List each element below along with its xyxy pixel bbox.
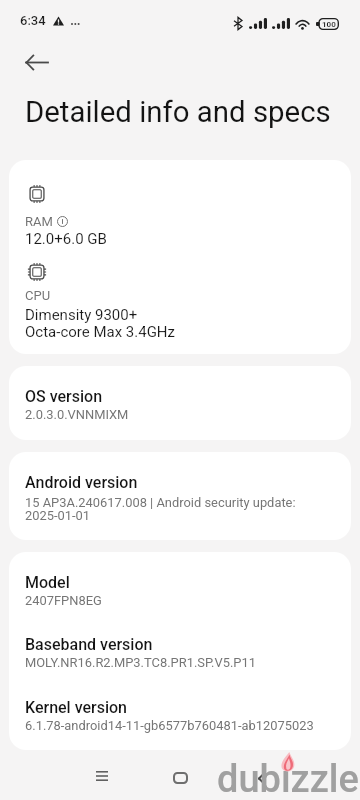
staticText: Android version: [25, 473, 138, 492]
staticText: dubizzle: [217, 757, 359, 800]
button[interactable]: Android version: [9, 452, 351, 540]
staticText: 100: [322, 20, 336, 29]
staticText: 15 AP3A.240617.008 | Android security up…: [25, 495, 296, 510]
button[interactable]: Recent apps: [78, 752, 126, 800]
button[interactable]: Home: [156, 754, 204, 800]
staticText: 12.0+6.0 GB: [25, 230, 107, 248]
staticText: 6.1.78-android14-11-gb6577b760481-ab1207…: [25, 718, 314, 733]
staticText: OS version: [25, 387, 103, 406]
staticText: RAM: [25, 214, 53, 229]
staticText: Kernel version: [25, 698, 128, 717]
staticText: 2025-01-01: [25, 508, 91, 523]
staticText: CPU: [25, 288, 51, 303]
staticText: Octa-core Max 3.4GHz: [25, 323, 175, 341]
staticText: 2407FPN8EG: [25, 593, 102, 608]
staticText: Model: [25, 573, 70, 592]
button[interactable]: OS version: [9, 366, 351, 440]
staticText: 2.0.3.0.VNNMIXM: [25, 407, 129, 422]
button[interactable]: Back: [13, 39, 60, 86]
button[interactable]: Model: [9, 552, 351, 750]
staticText: Baseband version: [25, 635, 153, 654]
staticText: Dimensity 9300+: [25, 306, 138, 324]
staticText: MOLY.NR16.R2.MP3.TC8.PR1.SP.V5.P11: [25, 655, 256, 670]
button[interactable]: Back: [238, 754, 286, 800]
staticText: Detailed info and specs: [25, 95, 331, 129]
staticText: 6:34: [20, 13, 46, 28]
button[interactable]: RAM: [9, 160, 351, 354]
